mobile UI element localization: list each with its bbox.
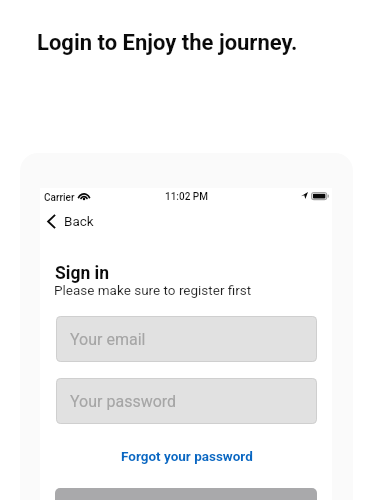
button[interactable] <box>55 488 317 500</box>
staticText: Sign in <box>55 263 110 284</box>
staticText: 11:02 PM <box>165 191 208 203</box>
button[interactable]: Back <box>41 208 104 234</box>
staticText: Back <box>64 213 94 229</box>
staticText: Carrier <box>44 192 75 204</box>
button[interactable]: Your password <box>56 378 317 424</box>
staticText: Please make sure to register first <box>54 282 252 298</box>
staticText: Login to Enjoy the journey. <box>37 30 298 56</box>
staticText: Your email <box>70 330 146 349</box>
button[interactable]: Your email <box>56 316 317 362</box>
staticText: Your password <box>70 392 177 411</box>
staticText: Forgot your password <box>121 448 253 464</box>
button[interactable]: Forgot your password <box>115 443 259 469</box>
